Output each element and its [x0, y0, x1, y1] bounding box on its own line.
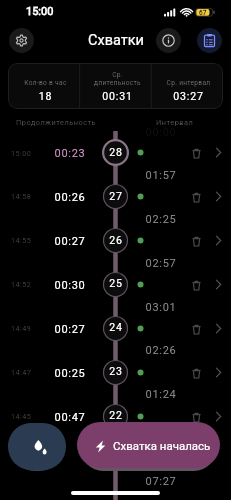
staticText: 01:24: [136, 388, 186, 401]
staticText: Ср. длительность: [84, 71, 151, 87]
staticText: 14:55: [11, 236, 32, 244]
button[interactable]: Settings: [9, 28, 34, 53]
staticText: 23: [102, 365, 130, 377]
staticText: 00:47: [41, 411, 99, 424]
staticText: 26: [102, 234, 130, 246]
button[interactable]: [0, 269, 231, 301]
staticText: 14:47: [11, 368, 32, 376]
staticText: 22: [102, 409, 130, 421]
staticText: 00:30: [41, 279, 99, 292]
staticText: 00:25: [41, 367, 99, 380]
staticText: 07:27: [136, 475, 186, 488]
staticText: 02:57: [136, 257, 186, 270]
button[interactable]: [0, 312, 231, 344]
button[interactable]: Кол-во в час: [8, 63, 223, 109]
button[interactable]: Open: [208, 362, 228, 382]
staticText: 14:58: [11, 192, 32, 200]
button[interactable]: Open: [208, 318, 228, 338]
staticText: Продолжительность: [16, 118, 97, 127]
button[interactable]: [0, 137, 231, 169]
staticText: 14:52: [11, 280, 32, 288]
staticText: Ср. интервал: [155, 79, 222, 87]
staticText: 67: [199, 9, 207, 17]
button[interactable]: [0, 356, 231, 388]
staticText: Кол-во в час: [12, 79, 79, 87]
button[interactable]: Delete: [186, 319, 206, 339]
staticText: 02:25: [136, 213, 186, 226]
staticText: Схватки: [88, 32, 144, 49]
button[interactable]: Delete: [186, 363, 206, 383]
button[interactable]: Delete: [186, 143, 206, 163]
staticText: 00:27: [41, 235, 99, 248]
staticText: Интервал: [156, 118, 194, 127]
staticText: 00:31: [84, 90, 151, 102]
button[interactable]: [0, 181, 231, 213]
button[interactable]: Схватки: [82, 29, 150, 51]
button[interactable]: [0, 400, 231, 432]
staticText: Схватка началась: [113, 439, 211, 452]
staticText: 24: [102, 321, 130, 333]
staticText: 25: [102, 277, 130, 289]
staticText: 03:27: [155, 90, 222, 102]
staticText: 00:27: [41, 323, 99, 336]
staticText: 00:26: [41, 191, 99, 204]
button[interactable]: History: [197, 28, 222, 53]
staticText: 14:45: [11, 412, 32, 420]
button[interactable]: Open: [208, 230, 228, 250]
staticText: 15:00: [11, 149, 32, 157]
staticText: 14:49: [11, 324, 32, 332]
button[interactable]: [0, 225, 231, 257]
button[interactable]: Open: [208, 186, 228, 206]
button[interactable]: Схватка началась: [77, 422, 220, 468]
button[interactable]: Delete: [186, 407, 206, 427]
staticText: 03:01: [136, 301, 186, 314]
button[interactable]: Delete: [186, 275, 206, 295]
staticText: 27: [102, 190, 130, 202]
button[interactable]: Water intake: [8, 423, 66, 470]
staticText: 28: [102, 146, 130, 158]
staticText: 00:00: [136, 126, 186, 139]
staticText: 15:00: [26, 5, 54, 18]
staticText: 18: [12, 90, 79, 102]
staticText: 00:23: [41, 147, 99, 160]
staticText: 02:26: [136, 344, 186, 357]
button[interactable]: Delete: [186, 187, 206, 207]
button[interactable]: Open: [208, 406, 228, 426]
button[interactable]: Open: [208, 274, 228, 294]
staticText: 01:57: [136, 169, 186, 182]
button[interactable]: Delete: [186, 231, 206, 251]
button[interactable]: Open: [208, 142, 228, 162]
button[interactable]: Info: [156, 28, 181, 53]
